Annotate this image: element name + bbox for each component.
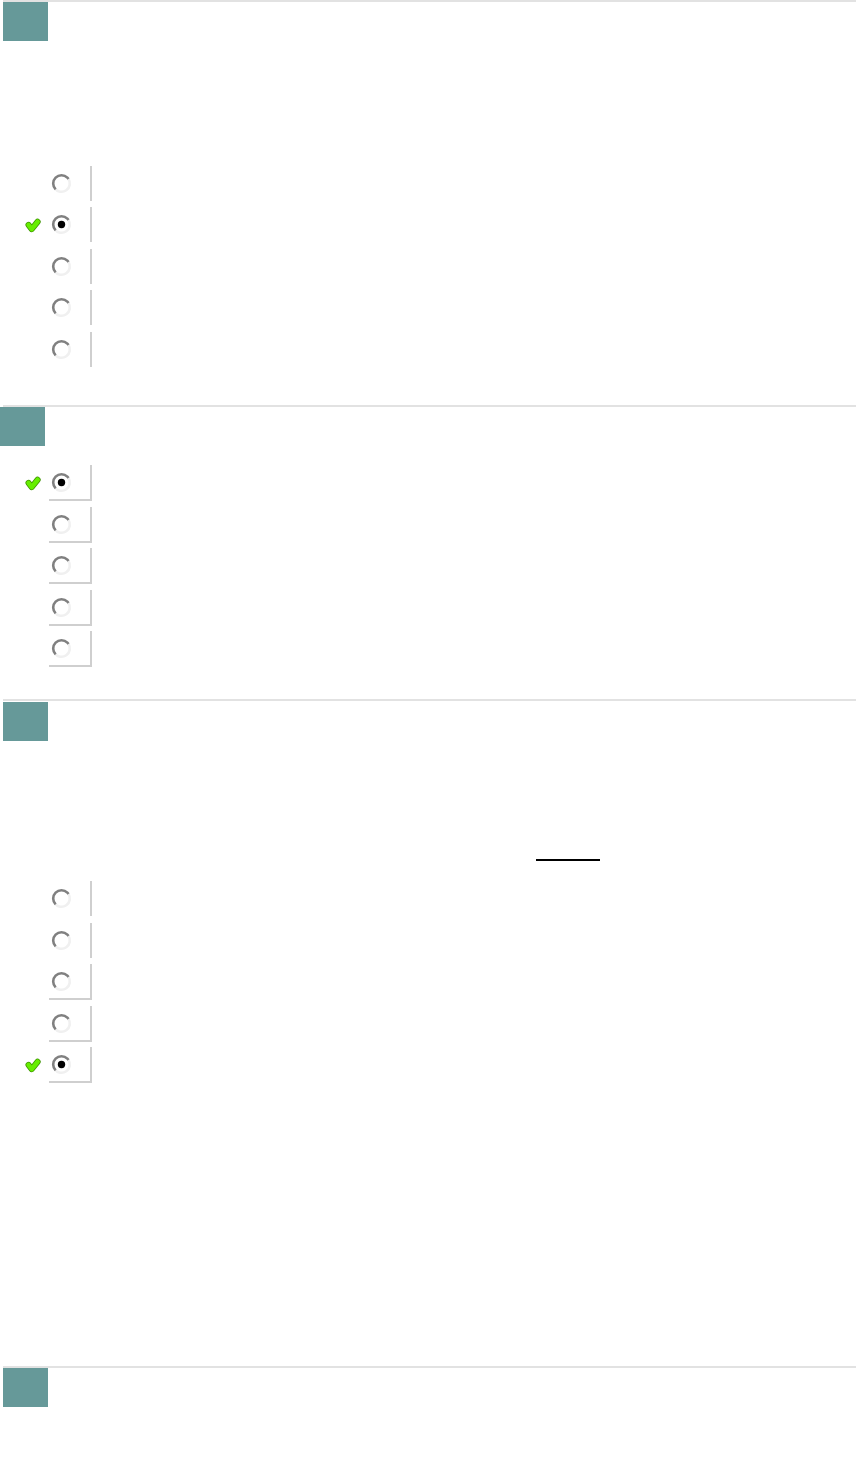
button[interactable]: Option 2, selected xyxy=(20,207,92,242)
button[interactable]: Option 1 xyxy=(20,881,92,916)
button[interactable]: Option 2 xyxy=(20,923,92,958)
button[interactable]: Option 5, selected xyxy=(20,1047,92,1082)
button[interactable]: Option 3 xyxy=(20,548,92,583)
button[interactable]: Option 5 xyxy=(20,332,92,367)
button[interactable]: Option 5 xyxy=(20,631,92,666)
button[interactable]: Option 1, selected xyxy=(20,465,92,500)
button[interactable]: Option 1 xyxy=(20,166,92,201)
button[interactable]: Option 3 xyxy=(20,249,92,284)
button[interactable]: Option 4 xyxy=(20,590,92,625)
button[interactable]: Option 4 xyxy=(20,1006,92,1041)
button[interactable]: Option 3 xyxy=(20,964,92,999)
button[interactable]: Option 4 xyxy=(20,290,92,325)
button[interactable]: Option 2 xyxy=(20,507,92,542)
